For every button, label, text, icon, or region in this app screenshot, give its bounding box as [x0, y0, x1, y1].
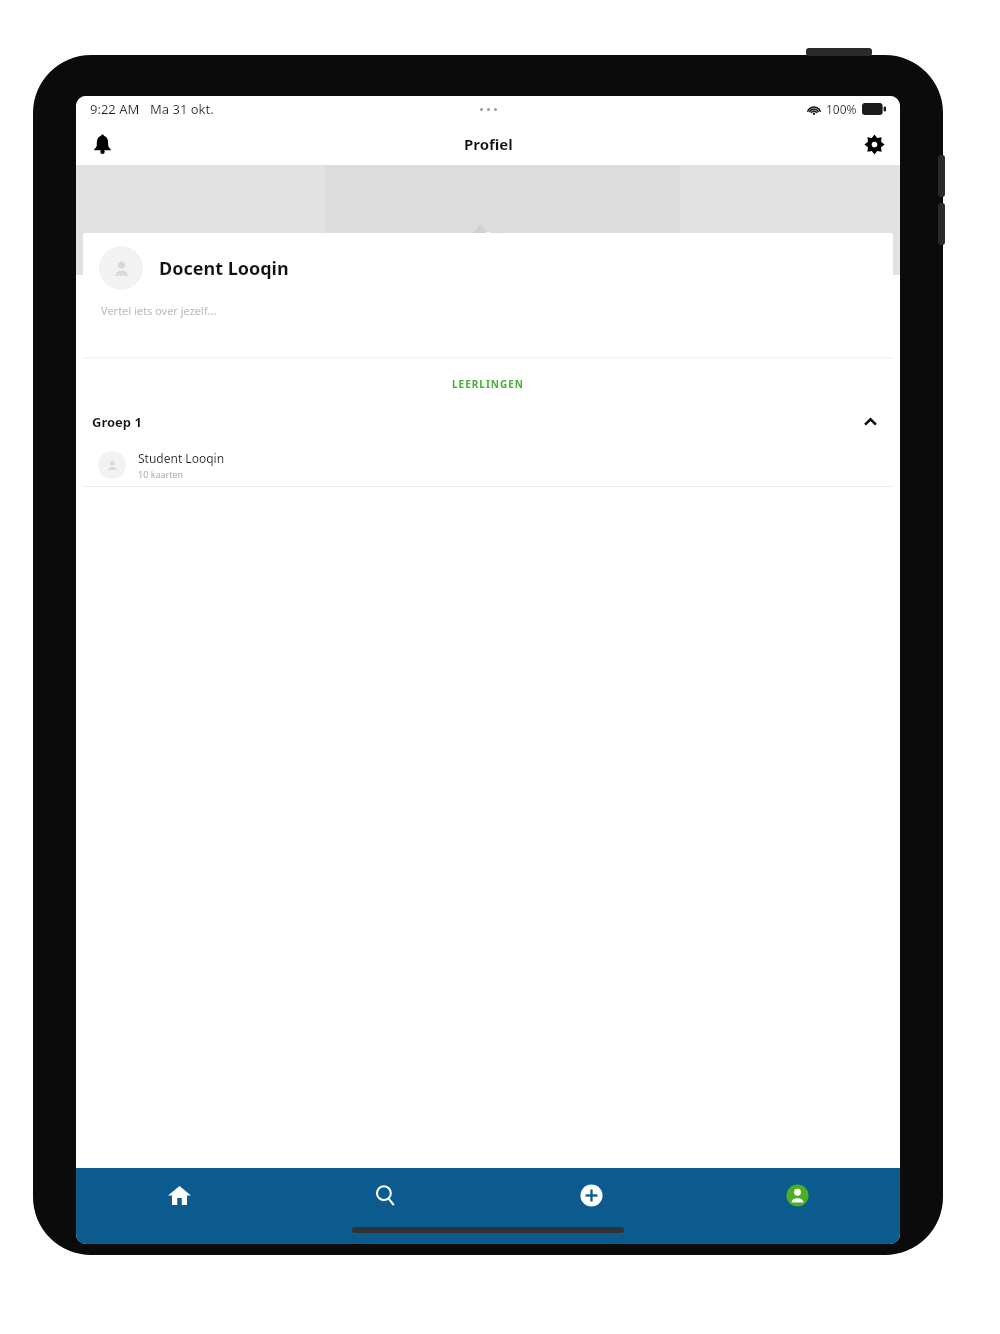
button[interactable]: LEERLINGEN	[76, 368, 900, 400]
staticText: Profiel	[464, 134, 513, 154]
button[interactable]: Docent Looqin	[83, 233, 893, 357]
staticText: 100%	[826, 101, 857, 117]
staticText: Docent Looqin	[159, 256, 289, 281]
staticText: Groep 1	[92, 413, 142, 431]
button[interactable]: Notifications	[82, 124, 122, 164]
other: Collapse group	[858, 410, 882, 434]
button[interactable]: Add	[488, 1168, 694, 1222]
staticText: Vertel iets over jezelf...	[101, 303, 217, 318]
staticText: Ma 31 okt.	[150, 100, 214, 118]
button[interactable]: Student Looqin	[76, 444, 900, 486]
button[interactable]: Home	[76, 1168, 282, 1222]
button[interactable]: Profile	[694, 1168, 900, 1222]
staticText: Student Looqin	[138, 450, 225, 466]
button[interactable]: Settings	[854, 124, 894, 164]
staticText: 0	[485, 228, 492, 243]
staticText: 9:22 AM	[90, 100, 140, 118]
button[interactable]: Groep 1	[76, 400, 900, 444]
staticText: LEERLINGEN	[452, 377, 524, 391]
staticText: 10 kaarten	[138, 468, 184, 480]
button[interactable]: Search	[282, 1168, 488, 1222]
